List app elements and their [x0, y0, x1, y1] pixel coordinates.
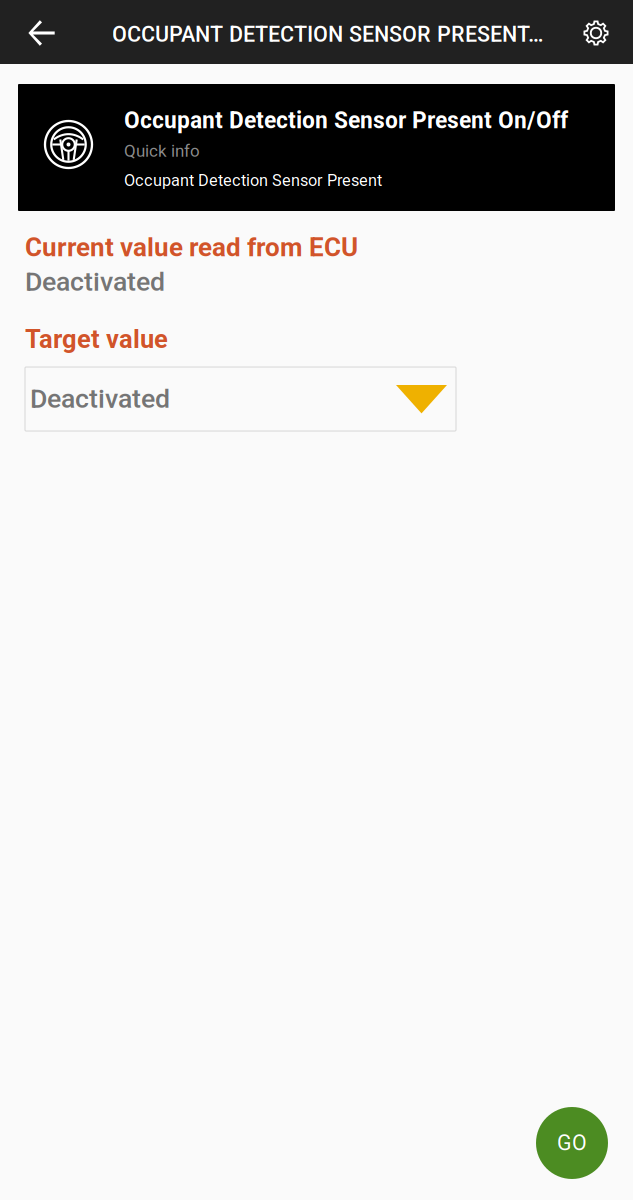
button[interactable]: Settings — [564, 1, 628, 65]
staticText: OCCUPANT DETECTION SENSOR PRESENT… — [112, 21, 543, 47]
staticText: Occupant Detection Sensor Present On/Off — [124, 106, 568, 134]
staticText: GO — [557, 1130, 587, 1155]
staticText: Deactivated — [25, 266, 165, 297]
staticText: Deactivated — [30, 383, 170, 414]
staticText: Quick info — [124, 141, 200, 161]
button[interactable]: Deactivated — [25, 367, 456, 431]
staticText: Occupant Detection Sensor Present — [124, 171, 382, 190]
staticText: Current value read from ECU — [25, 232, 358, 263]
button[interactable]: Back — [9, 1, 73, 65]
button[interactable]: GO — [536, 1107, 608, 1179]
staticText: Target value — [25, 324, 168, 354]
